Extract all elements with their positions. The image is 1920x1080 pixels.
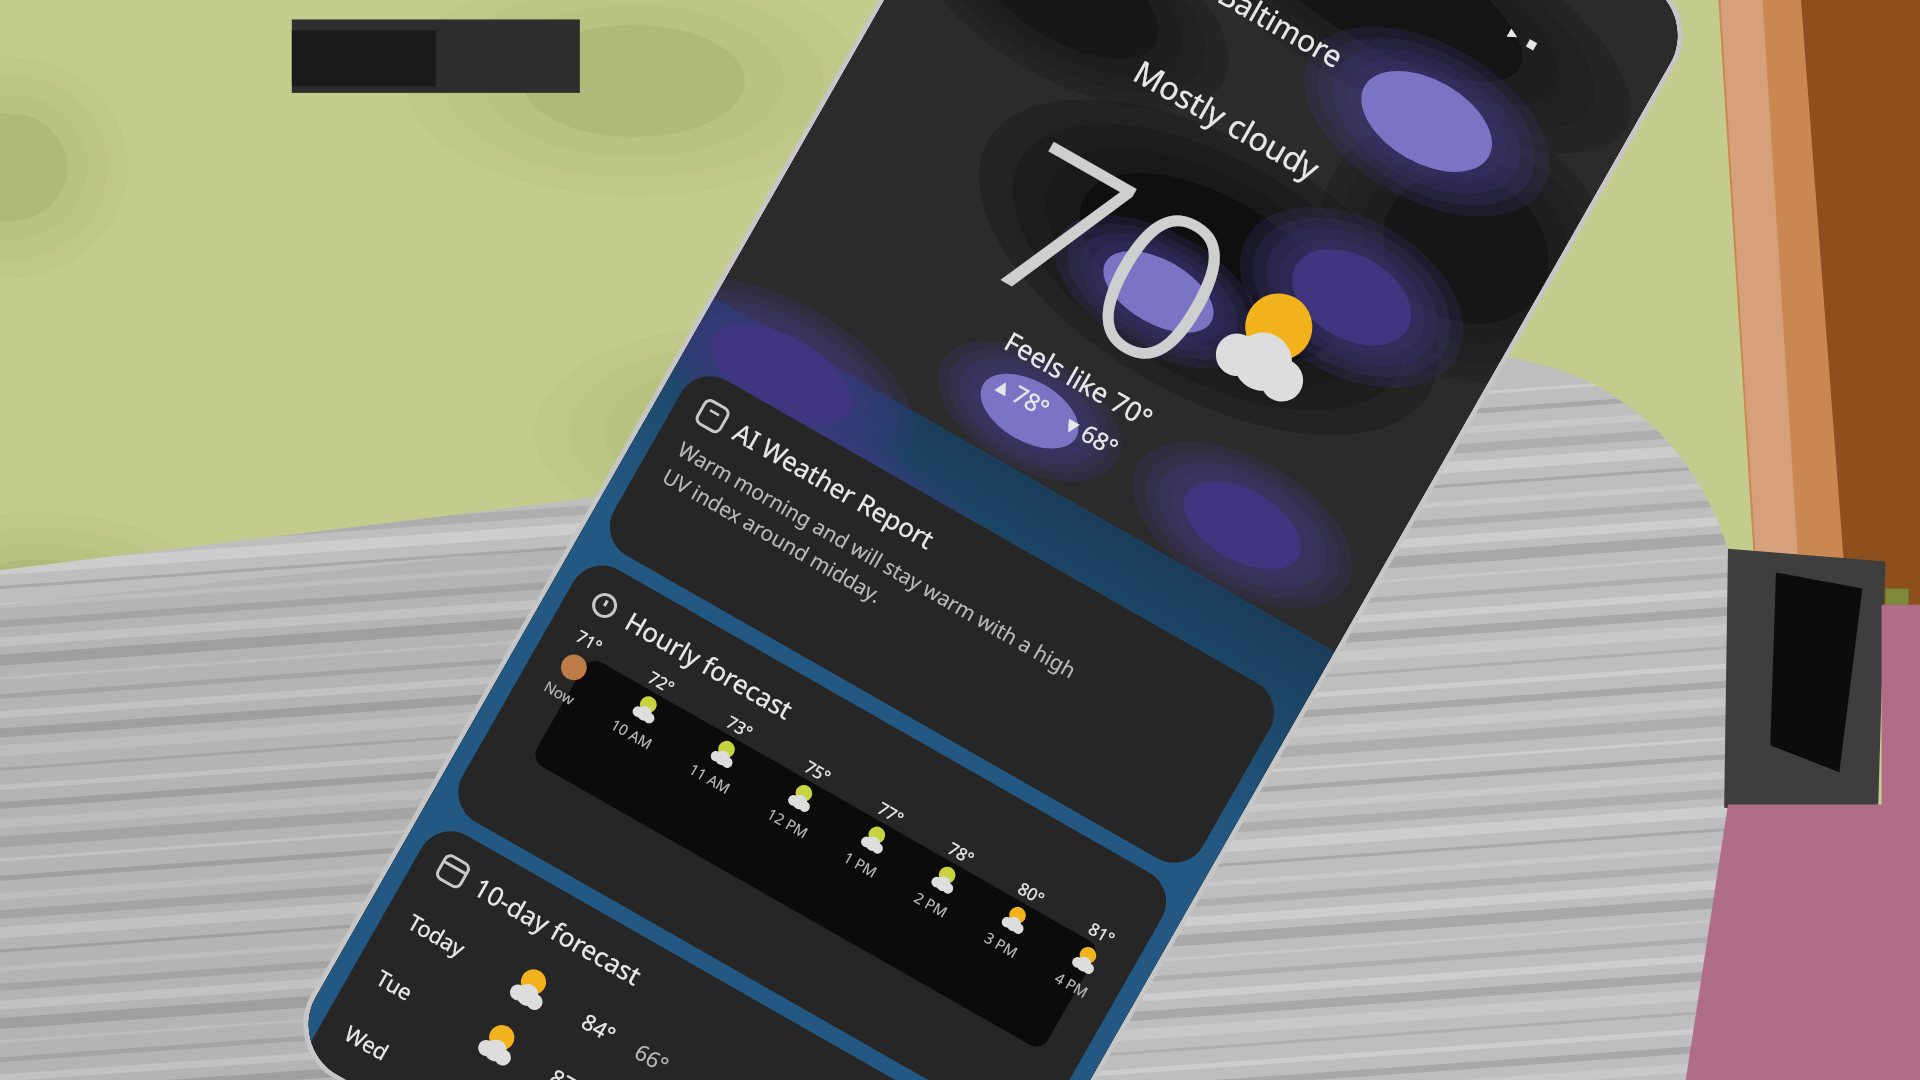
staticText: 87° [545,1061,590,1080]
button[interactable]: 80° [980,874,1053,963]
staticText: 3 PM [981,927,1022,962]
staticText: Mostly cloudy [906,0,1548,316]
staticText: Wed [340,1018,457,1080]
button[interactable]: 10-day forecast [303,819,1027,1080]
button[interactable]: Baltimore [1197,0,1365,87]
button[interactable]: 75° [763,750,843,843]
staticText: 4 PM [1051,967,1093,1002]
staticText: ▸ [1505,22,1524,45]
staticText: Warm morning and will stay warm with a h… [658,435,1081,711]
staticText: 1 PM [840,847,881,882]
staticText: 71° [572,624,607,658]
staticText: 78° [944,836,979,870]
button[interactable]: Wed [331,1003,907,1080]
button[interactable]: Today [395,892,970,1080]
staticText: Now [541,676,578,709]
staticText: Hourly forecast [620,603,799,726]
staticText: 66° [630,1036,675,1079]
staticText: Feels like 70° [760,186,1398,572]
staticText: ▴ 78° [991,368,1057,425]
staticText: 10 AM [607,714,656,754]
staticText: 75° [800,755,835,788]
staticText: 77° [873,796,908,830]
staticText: 81° [1084,917,1119,950]
staticText: Today [403,906,520,991]
staticText: Baltimore [1211,0,1351,77]
button[interactable]: Battery and signal status [1497,14,1550,64]
staticText: ▪ [1523,33,1542,55]
button[interactable]: Tue [363,947,938,1080]
staticText: ▾ 68° [1059,407,1125,464]
button[interactable]: 70 [939,71,1394,495]
staticText: 10-day forecast [468,869,649,992]
staticText: Tue [371,962,489,1047]
button[interactable]: 81° [1050,914,1124,1003]
staticText: 70 [942,73,1285,432]
button[interactable]: Hourly forecast [446,553,1178,1080]
button[interactable]: 78° [910,833,983,923]
staticText: 2 PM [911,887,952,922]
staticText: 73° [722,710,757,744]
button[interactable]: 71° [540,622,609,710]
staticText: 11 AM [686,759,735,798]
button[interactable]: 77° [839,793,913,883]
other: Partly cloudy [1196,268,1349,421]
button[interactable]: AI Weather Report [597,364,1286,875]
staticText: AI Weather Report [728,414,941,556]
staticText: 72° [644,666,679,699]
button[interactable]: 72° [607,661,688,754]
button[interactable]: 73° [685,705,766,799]
staticText: 84° [577,1006,622,1049]
staticText: 80° [1014,877,1049,910]
staticText: 12 PM [764,803,812,842]
